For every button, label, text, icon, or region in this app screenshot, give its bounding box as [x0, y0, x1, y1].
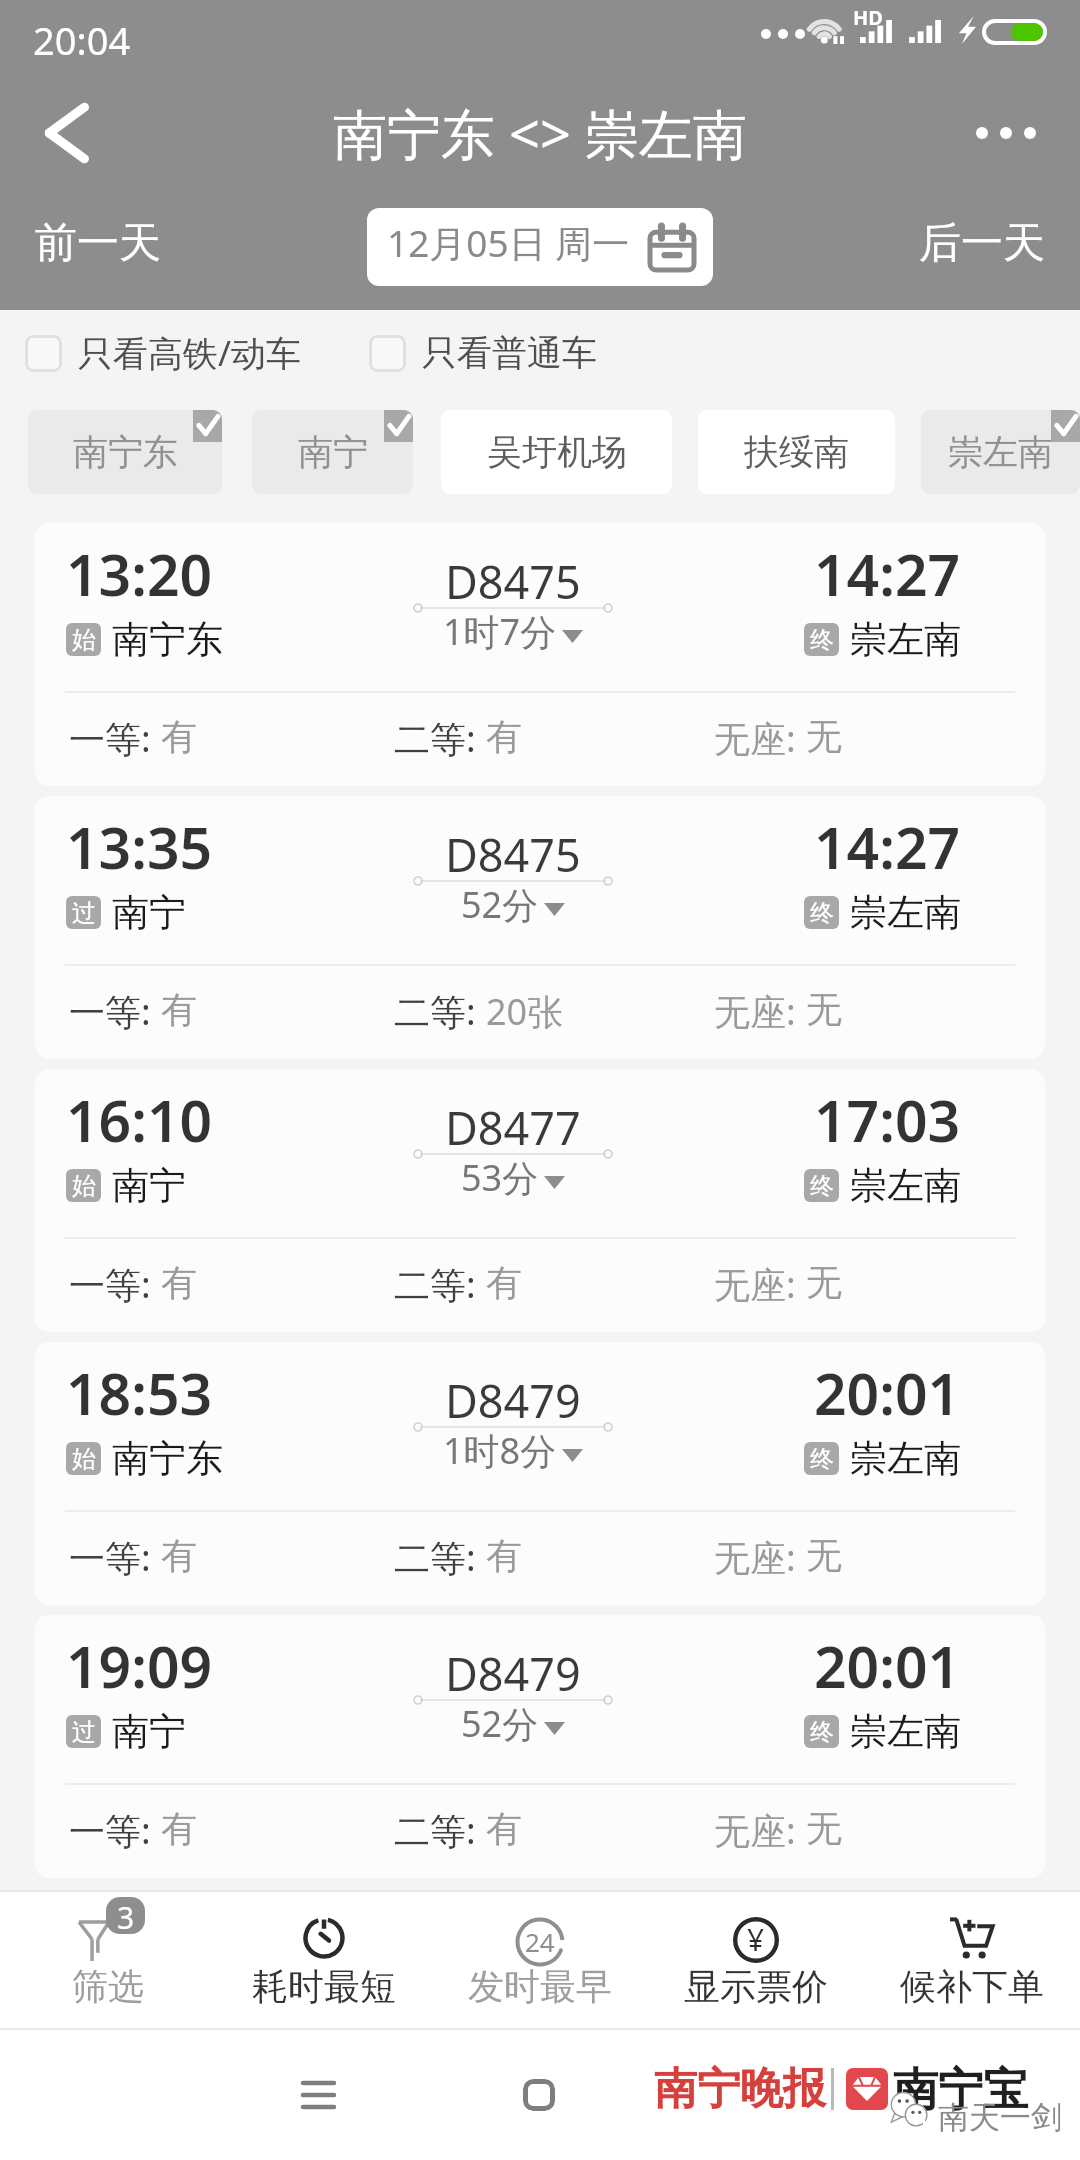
staticText: 显示票价: [684, 1964, 828, 2009]
button[interactable]: 南宁: [252, 410, 413, 494]
staticText: 始: [72, 1171, 96, 1201]
staticText: 12月05日 周一: [387, 217, 630, 268]
staticText: 崇左南: [850, 616, 961, 663]
staticText: 14:27: [814, 808, 961, 886]
staticText: 13:20: [66, 535, 213, 613]
button[interactable]: 16:10: [35, 1069, 1045, 1332]
staticText: 过: [72, 1717, 96, 1747]
staticText: 无座:: [714, 1533, 806, 1582]
staticText: 53分: [461, 1153, 539, 1202]
staticText: 二等:: [394, 1806, 486, 1855]
staticText: 52分: [461, 1699, 539, 1748]
button[interactable]: 候补下单: [864, 1892, 1080, 2028]
button[interactable]: 后一天: [899, 209, 1080, 278]
staticText: 一等:: [69, 1806, 161, 1855]
staticText: D8477: [445, 1097, 581, 1158]
staticText: 无: [806, 1260, 842, 1305]
button[interactable]: Back: [0, 70, 135, 195]
staticText: 有: [161, 987, 197, 1032]
staticText: 有: [161, 1533, 197, 1578]
staticText: 有: [486, 1806, 522, 1851]
staticText: 有: [161, 1806, 197, 1851]
staticText: 无座:: [714, 714, 806, 763]
staticText: 有: [161, 714, 197, 759]
staticText: 17:03: [814, 1081, 961, 1159]
staticText: 前一天: [35, 217, 161, 270]
staticText: 终: [810, 625, 834, 655]
staticText: 20:01: [814, 1354, 961, 1432]
staticText: 二等:: [394, 1533, 486, 1582]
button[interactable]: 南宁东: [28, 410, 222, 494]
staticText: 南宁东: [112, 616, 223, 663]
staticText: 13:35: [66, 808, 213, 886]
button[interactable]: 只看普通车: [369, 331, 597, 375]
staticText: D8475: [445, 824, 581, 885]
staticText: 二等:: [394, 714, 486, 763]
button[interactable]: 耗时最短: [216, 1892, 432, 2028]
staticText: 南宁东: [112, 1435, 223, 1482]
button[interactable]: 只看高铁/动车: [25, 329, 302, 377]
staticText: 吴圩机场: [487, 430, 627, 474]
staticText: 一等:: [69, 1533, 161, 1582]
staticText: 20:04: [33, 14, 131, 66]
staticText: 1时8分: [443, 1426, 557, 1475]
staticText: 崇左南: [850, 1435, 961, 1482]
button[interactable]: 18:53: [35, 1342, 1045, 1605]
staticText: D8479: [445, 1370, 581, 1431]
staticText: 14:27: [814, 535, 961, 613]
staticText: 有: [161, 1260, 197, 1305]
staticText: 无: [806, 987, 842, 1032]
button[interactable]: ¥: [648, 1892, 864, 2028]
button[interactable]: 3: [0, 1892, 216, 2028]
staticText: 20张: [486, 987, 564, 1036]
staticText: 扶绥南: [744, 430, 849, 474]
staticText: 崇左南: [850, 1708, 961, 1755]
staticText: 无座:: [714, 1260, 806, 1309]
staticText: 终: [810, 898, 834, 928]
staticText: 南宁: [298, 430, 368, 474]
staticText: 发时最早: [468, 1964, 612, 2009]
staticText: 终: [810, 1717, 834, 1747]
button[interactable]: 19:09: [35, 1615, 1045, 1878]
staticText: 南宁晚报: [654, 2062, 826, 2116]
staticText: 无座:: [714, 987, 806, 1036]
staticText: 一等:: [69, 1260, 161, 1309]
button[interactable]: 吴圩机场: [441, 410, 672, 494]
staticText: 52分: [461, 880, 539, 929]
staticText: 20:01: [814, 1627, 961, 1705]
staticText: 终: [810, 1444, 834, 1474]
staticText: 有: [486, 1260, 522, 1305]
button[interactable]: Home: [499, 2055, 579, 2135]
button[interactable]: Recents: [278, 2055, 358, 2135]
button[interactable]: 12月05日 周一: [367, 208, 713, 286]
staticText: 过: [72, 898, 96, 928]
staticText: 无: [806, 714, 842, 759]
button[interactable]: More options: [945, 70, 1080, 195]
staticText: 崇左南: [850, 1162, 961, 1209]
button[interactable]: 13:35: [35, 796, 1045, 1059]
staticText: D8479: [445, 1643, 581, 1704]
staticText: 崇左南: [850, 889, 961, 936]
staticText: 有: [486, 1533, 522, 1578]
staticText: 耗时最短: [252, 1964, 396, 2009]
staticText: 无座:: [714, 1806, 806, 1855]
staticText: 南宁东 <> 崇左南: [333, 96, 747, 170]
staticText: 二等:: [394, 987, 486, 1036]
staticText: 16:10: [66, 1081, 213, 1159]
staticText: 无: [806, 1533, 842, 1578]
button[interactable]: 13:20: [35, 523, 1045, 786]
staticText: 无: [806, 1806, 842, 1851]
button[interactable]: 扶绥南: [698, 410, 895, 494]
button[interactable]: 前一天: [0, 209, 181, 278]
button[interactable]: 24: [432, 1892, 648, 2028]
staticText: 南宁: [112, 1162, 186, 1209]
staticText: 南宁: [112, 889, 186, 936]
staticText: 南宁: [112, 1708, 186, 1755]
staticText: 只看普通车: [422, 331, 597, 375]
button[interactable]: 崇左南: [921, 410, 1080, 494]
staticText: 1时7分: [443, 607, 557, 656]
staticText: 终: [810, 1171, 834, 1201]
staticText: 南宁宝: [893, 2062, 1028, 2119]
staticText: 二等:: [394, 1260, 486, 1309]
staticText: ¥: [747, 1919, 765, 1960]
